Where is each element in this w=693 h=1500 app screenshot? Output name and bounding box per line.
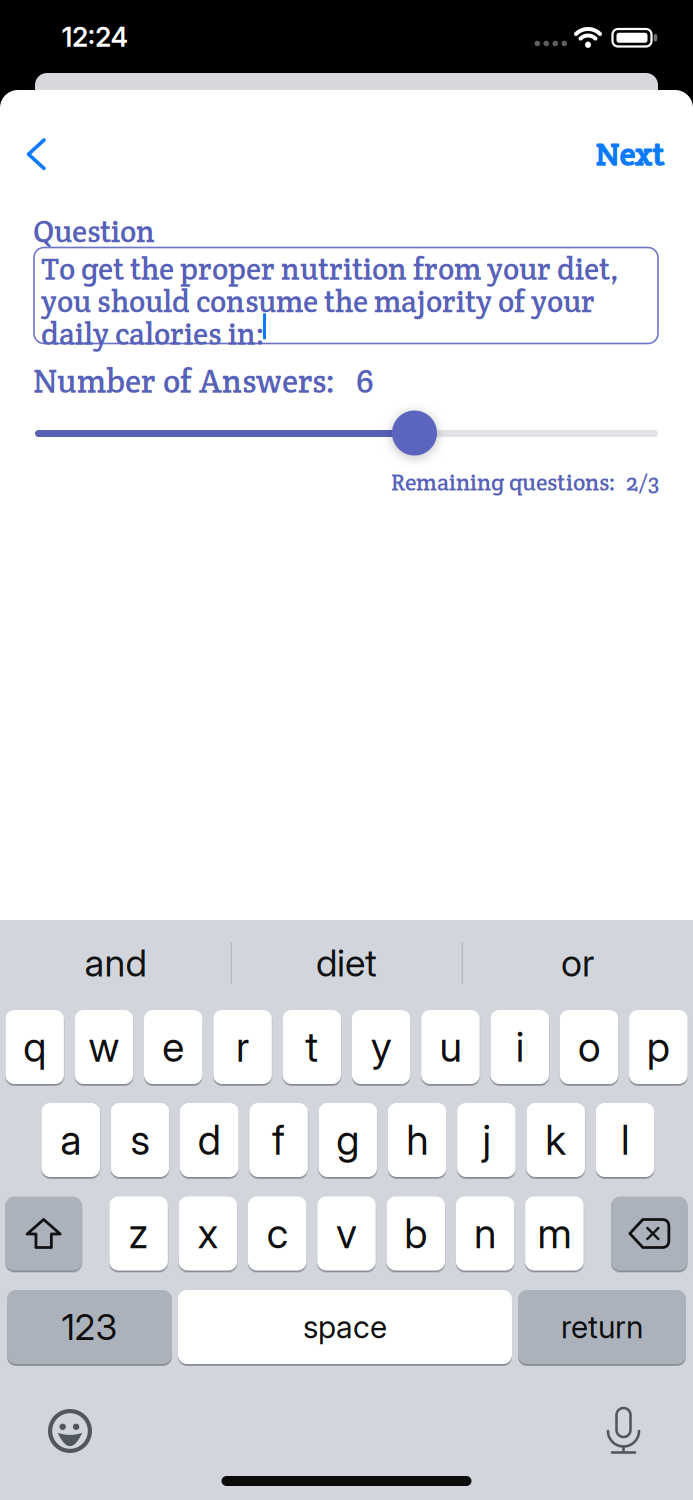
button[interactable]: d [180,1103,238,1179]
button[interactable]: g [319,1103,377,1179]
staticText: return [561,1308,643,1345]
staticText: daily calories in: [41,314,265,354]
button[interactable]: Number of answers slider [392,410,437,455]
staticText: d [198,1115,221,1165]
button[interactable]: k [526,1103,585,1179]
staticText: x [197,1209,218,1258]
staticText: i [516,1022,524,1072]
button[interactable]: Delete [611,1196,688,1272]
button[interactable]: or [462,920,693,1006]
button[interactable]: Back [21,137,51,171]
staticText: diet [316,940,377,986]
staticText: g [336,1115,359,1165]
button[interactable]: Shift [5,1196,82,1272]
button[interactable]: s [111,1103,169,1179]
button[interactable]: space [178,1290,512,1366]
button[interactable]: and [0,920,231,1006]
staticText: h [406,1115,428,1165]
staticText: 123 [61,1305,117,1349]
staticText: To get the proper nutrition from your di… [41,249,619,289]
button[interactable]: Emoji [48,1409,92,1453]
button[interactable]: l [596,1103,654,1179]
button[interactable]: p [629,1010,688,1086]
button[interactable]: 123 [7,1290,172,1366]
button[interactable]: h [388,1103,446,1179]
staticText: k [545,1115,566,1165]
button[interactable]: u [421,1010,480,1086]
staticText: Remaining questions: 2/3 [391,467,659,497]
staticText: r [236,1022,249,1072]
button[interactable]: To get the proper nutrition from your di… [34,247,658,343]
button[interactable]: b [387,1196,445,1272]
staticText: and [84,940,146,986]
staticText: o [578,1022,600,1072]
staticText: q [23,1022,46,1072]
button[interactable]: z [109,1196,168,1272]
staticText: a [60,1115,81,1165]
staticText: 12:24 [61,21,128,53]
staticText: b [404,1209,427,1258]
button[interactable]: m [525,1196,584,1272]
staticText: e [162,1022,184,1072]
button[interactable]: f [249,1103,308,1179]
button[interactable]: e [144,1010,202,1086]
staticText: t [305,1022,318,1072]
staticText: space [303,1308,387,1345]
staticText: Number of Answers: 6 [33,360,374,402]
staticText: s [130,1115,149,1165]
button[interactable]: v [317,1196,376,1272]
staticText: Next [595,134,664,175]
button[interactable]: w [75,1010,133,1086]
button[interactable]: j [457,1103,516,1179]
button[interactable]: r [213,1010,272,1086]
staticText: y [371,1022,392,1072]
button[interactable]: c [248,1196,306,1272]
button[interactable]: q [5,1010,64,1086]
button[interactable]: n [456,1196,514,1272]
staticText: u [439,1022,461,1072]
staticText: or [561,940,594,986]
button[interactable]: diet [231,920,462,1006]
staticText: Question [33,212,155,251]
button[interactable]: i [490,1010,549,1086]
staticText: v [336,1209,357,1258]
button[interactable]: t [283,1010,341,1086]
staticText: n [474,1209,496,1258]
staticText: l [621,1115,629,1165]
staticText: f [272,1115,285,1165]
staticText: p [647,1022,670,1072]
button[interactable]: y [352,1010,410,1086]
button[interactable]: Next [591,134,668,175]
button[interactable]: a [41,1103,100,1179]
button[interactable]: return [518,1290,686,1366]
button[interactable]: o [560,1010,618,1086]
staticText: you should consume the majority of your [41,282,595,321]
button[interactable]: x [179,1196,237,1272]
staticText: z [129,1209,149,1258]
staticText: w [88,1022,119,1072]
staticText: m [537,1209,571,1258]
staticText: c [267,1209,288,1258]
button[interactable]: Dictation [604,1403,643,1457]
staticText: j [482,1115,490,1165]
